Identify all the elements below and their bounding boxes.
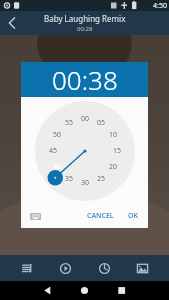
staticText: 05 bbox=[97, 118, 106, 128]
staticText: 50 bbox=[53, 130, 62, 140]
staticText: 55 bbox=[65, 118, 74, 128]
staticText: 00 bbox=[81, 114, 90, 124]
staticText: 25 bbox=[97, 174, 106, 184]
button[interactable]: Timer bbox=[93, 257, 115, 279]
staticText: 30 bbox=[81, 178, 90, 188]
button[interactable]: Back bbox=[0, 11, 24, 35]
staticText: 10 bbox=[109, 130, 118, 140]
button[interactable]: Minute picker bbox=[35, 101, 135, 201]
button[interactable]: Gallery bbox=[131, 257, 153, 279]
button[interactable]: OK bbox=[124, 208, 142, 224]
button[interactable]: 00:38 bbox=[21, 62, 148, 97]
staticText: OK bbox=[128, 211, 138, 221]
staticText: Baby Laughing Remix bbox=[44, 13, 126, 24]
staticText: CANCEL bbox=[87, 211, 114, 221]
button[interactable]: Play bbox=[54, 257, 76, 279]
button[interactable]: Keyboard input bbox=[27, 208, 43, 224]
staticText: 00:38 bbox=[52, 62, 118, 97]
staticText: 35 bbox=[65, 174, 74, 184]
staticText: 15 bbox=[113, 146, 122, 156]
button[interactable]: CANCEL bbox=[83, 208, 118, 224]
staticText: 45 bbox=[49, 146, 58, 156]
staticText: 20 bbox=[109, 162, 118, 172]
staticText: 4:50 bbox=[153, 1, 167, 11]
staticText: 00:28 bbox=[77, 25, 93, 33]
button[interactable]: Playlist bbox=[16, 257, 38, 279]
staticText: 40 bbox=[53, 162, 62, 172]
